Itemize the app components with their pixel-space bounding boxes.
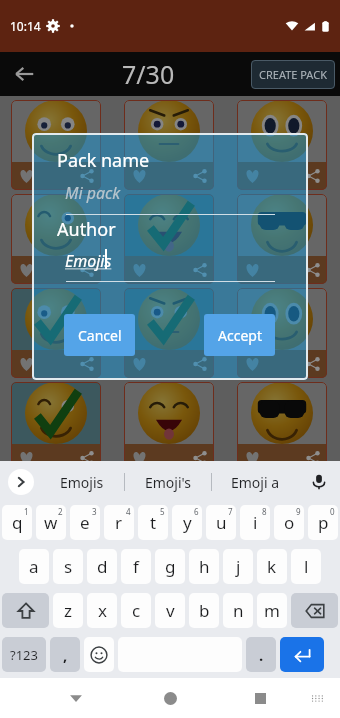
button[interactable]: g (155, 549, 185, 584)
button[interactable] (11, 382, 101, 472)
button[interactable] (124, 100, 214, 190)
button[interactable]: Comma (50, 637, 80, 672)
button[interactable]: z (53, 593, 83, 628)
staticText: Accept (218, 326, 262, 345)
button[interactable]: Recents (242, 680, 278, 716)
staticText: v (166, 599, 175, 622)
button[interactable] (11, 194, 101, 284)
button[interactable]: q (2, 505, 32, 540)
staticText: 7/30 (122, 57, 175, 91)
staticText: ?123 (10, 646, 38, 664)
staticText: t (150, 511, 157, 534)
button[interactable]: d (87, 549, 117, 584)
button[interactable]: Emoji's (126, 461, 210, 503)
button[interactable]: CREATE PACK (251, 60, 335, 89)
staticText: 1 (24, 506, 29, 517)
button[interactable]: k (257, 549, 287, 584)
button[interactable]: Emoji (84, 637, 114, 672)
staticText: e (80, 511, 90, 534)
staticText: l (304, 555, 309, 578)
button[interactable]: n (223, 593, 253, 628)
button[interactable]: Switch keyboard (302, 683, 332, 713)
staticText: Emojis (65, 250, 112, 272)
staticText: . (259, 645, 264, 665)
button[interactable]: w (36, 505, 66, 540)
staticText: q (12, 511, 23, 534)
button[interactable]: o (274, 505, 304, 540)
button[interactable]: Back (6, 56, 42, 92)
staticText: 0 (330, 506, 335, 517)
button[interactable]: m (257, 593, 287, 628)
button[interactable] (237, 382, 327, 472)
staticText: 6 (194, 506, 199, 517)
button[interactable] (124, 194, 214, 284)
staticText: a (29, 555, 39, 578)
button[interactable] (124, 288, 214, 378)
staticText: s (64, 555, 73, 578)
button[interactable]: x (87, 593, 117, 628)
staticText: u (216, 511, 227, 534)
button[interactable]: Backspace (291, 593, 338, 628)
button[interactable]: b (189, 593, 219, 628)
button[interactable] (237, 288, 327, 378)
staticText: 7 (228, 506, 233, 517)
button[interactable]: Period (246, 637, 276, 672)
button[interactable]: More suggestions (8, 469, 34, 495)
staticText: Cancel (78, 326, 122, 345)
staticText: Mi pack (65, 182, 121, 204)
staticText: Emoji a (231, 473, 280, 492)
button[interactable] (237, 194, 327, 284)
staticText: i (253, 511, 258, 534)
staticText: Emojis (60, 473, 104, 492)
button[interactable]: s (53, 549, 83, 584)
button[interactable]: Cancel (64, 314, 135, 356)
staticText: 9 (296, 506, 301, 517)
button[interactable]: Shift (2, 593, 49, 628)
staticText: 3 (92, 506, 97, 517)
staticText: f (133, 555, 139, 578)
button[interactable]: Emojis (40, 461, 124, 503)
button[interactable]: f (121, 549, 151, 584)
staticText: d (97, 555, 108, 578)
staticText: 4 (126, 506, 131, 517)
staticText: w (44, 511, 58, 534)
button[interactable]: Symbols (2, 637, 46, 672)
button[interactable]: h (189, 549, 219, 584)
staticText: k (267, 555, 277, 578)
button[interactable]: j (223, 549, 253, 584)
staticText: Emoji's (145, 473, 192, 492)
button[interactable]: Voice input (304, 467, 334, 497)
button[interactable] (11, 100, 101, 190)
staticText: n (233, 599, 244, 622)
button[interactable]: p (308, 505, 338, 540)
staticText: m (264, 599, 280, 622)
staticText: j (236, 555, 241, 578)
button[interactable]: e (70, 505, 100, 540)
button[interactable]: u (206, 505, 236, 540)
button[interactable]: t (138, 505, 168, 540)
button[interactable]: v (155, 593, 185, 628)
staticText: 2 (58, 506, 63, 517)
button[interactable]: Enter (280, 637, 324, 672)
button[interactable]: r (104, 505, 134, 540)
button[interactable]: a (19, 549, 49, 584)
staticText: z (64, 599, 72, 622)
staticText: p (318, 511, 329, 534)
button[interactable] (124, 382, 214, 472)
button[interactable]: Accept (204, 314, 275, 356)
staticText: c (132, 599, 141, 622)
button[interactable]: Back (58, 680, 94, 716)
button[interactable]: c (121, 593, 151, 628)
button[interactable]: l (291, 549, 321, 584)
staticText: 5 (160, 506, 165, 517)
button[interactable]: Home (152, 680, 188, 716)
button[interactable] (11, 288, 101, 378)
button[interactable]: y (172, 505, 202, 540)
button[interactable]: Emoji a (213, 461, 297, 503)
staticText: , (63, 645, 68, 665)
staticText: x (98, 599, 107, 622)
button[interactable] (237, 100, 327, 190)
staticText: b (199, 599, 210, 622)
button[interactable]: i (240, 505, 270, 540)
